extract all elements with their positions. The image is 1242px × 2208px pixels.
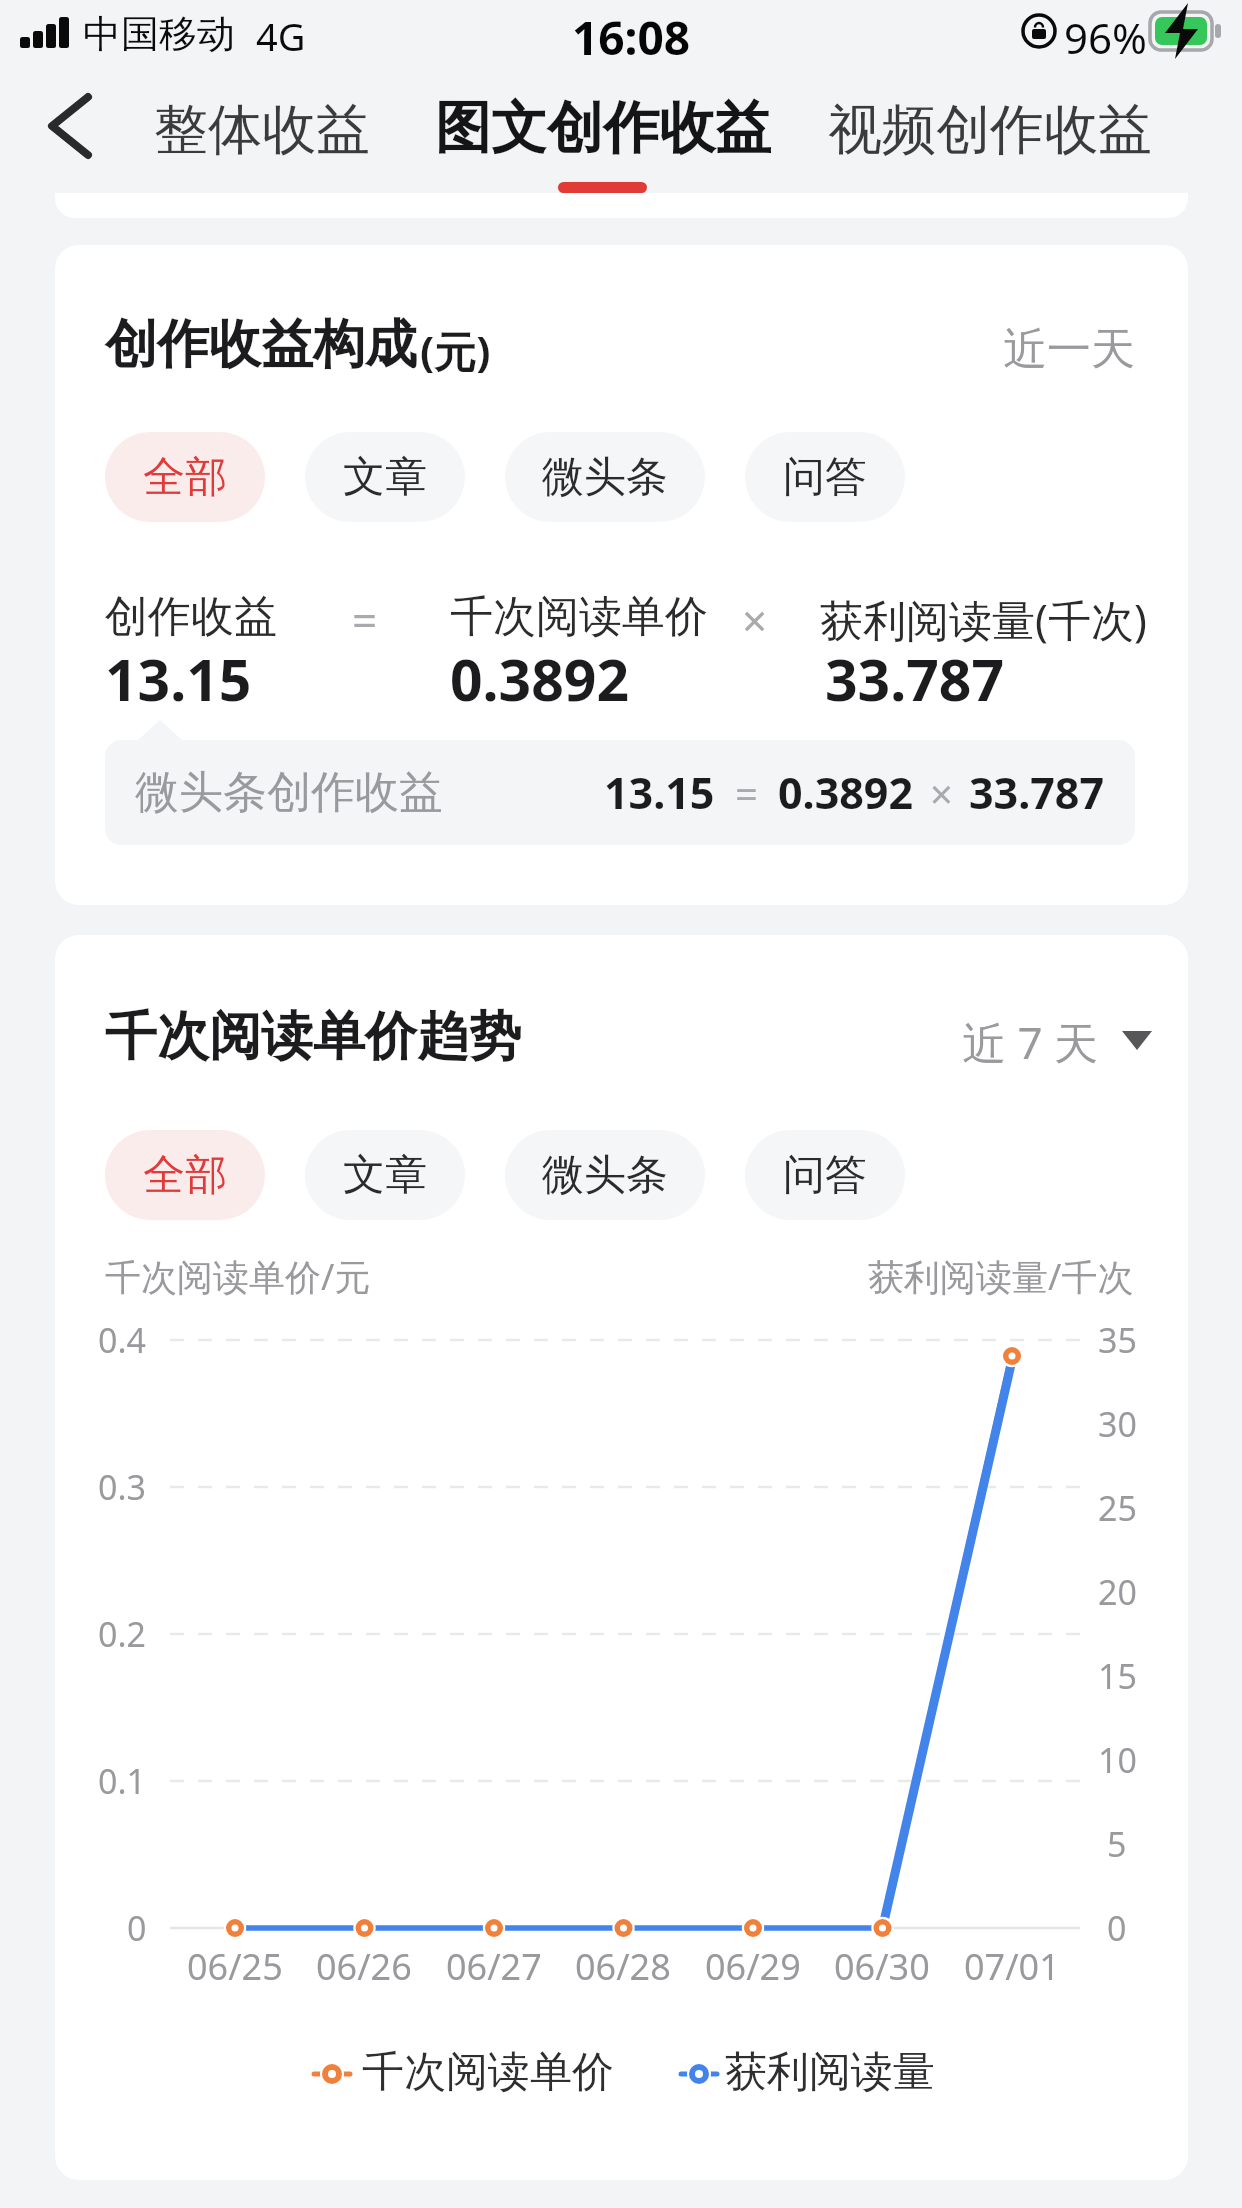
staticText: 获利阅读量(千次): [820, 590, 1147, 649]
staticText: 25: [1098, 1485, 1137, 1531]
staticText: 20: [1098, 1569, 1137, 1615]
staticText: 千次阅读单价: [362, 2046, 614, 2099]
staticText: 96%: [1064, 9, 1147, 66]
staticText: 4G: [256, 10, 306, 62]
staticText: 30: [1098, 1401, 1137, 1447]
staticText: 文章: [343, 451, 427, 504]
staticText: 0: [1107, 1905, 1127, 1951]
staticText: 15: [1098, 1653, 1137, 1699]
staticText: 问答: [783, 451, 867, 504]
staticText: 整体收益: [154, 96, 370, 164]
button[interactable]: 微头条: [505, 432, 705, 522]
staticText: 获利阅读量: [725, 2046, 935, 2099]
staticText: 近一天: [1003, 322, 1135, 377]
button[interactable]: 微头条: [505, 1130, 705, 1220]
staticText: 0.3: [98, 1464, 147, 1510]
staticText: 06/30: [834, 1942, 930, 1991]
button[interactable]: 问答: [745, 1130, 905, 1220]
staticText: 中国移动: [83, 10, 235, 58]
staticText: 微头条创作收益: [135, 765, 443, 820]
staticText: 视频创作收益: [828, 96, 1152, 164]
staticText: 16:08: [572, 6, 691, 69]
button[interactable]: [30, 80, 110, 180]
staticText: 图文创作收益: [435, 93, 771, 164]
button[interactable]: 文章: [305, 432, 465, 522]
staticText: 33.787: [969, 763, 1105, 822]
staticText: ×: [742, 590, 768, 650]
staticText: 微头条: [542, 1149, 668, 1202]
staticText: 13.15: [105, 640, 252, 718]
staticText: 获利阅读量/千次: [868, 1252, 1134, 1301]
staticText: 33.787: [825, 640, 1005, 718]
staticText: (元): [420, 322, 491, 379]
staticText: 13.15: [604, 763, 715, 822]
staticText: 07/01: [964, 1942, 1060, 1991]
staticText: =: [735, 766, 758, 820]
staticText: 全部: [143, 451, 227, 504]
staticText: 创作收益: [105, 590, 277, 644]
staticText: 千次阅读单价趋势: [105, 1004, 521, 1070]
staticText: 全部: [143, 1149, 227, 1202]
staticText: =: [352, 590, 378, 650]
staticText: 0.3892: [778, 763, 914, 822]
staticText: ×: [930, 766, 953, 820]
staticText: 0: [127, 1905, 147, 1951]
staticText: 创作收益构成: [105, 312, 417, 378]
staticText: 文章: [343, 1149, 427, 1202]
staticText: 千次阅读单价: [450, 590, 708, 644]
staticText: 06/25: [187, 1942, 283, 1991]
staticText: 0.4: [98, 1317, 147, 1363]
staticText: 5: [1107, 1821, 1127, 1867]
staticText: 06/29: [705, 1942, 801, 1991]
staticText: 0.2: [98, 1611, 147, 1657]
staticText: 0.1: [98, 1758, 147, 1804]
staticText: 近 7 天: [962, 1012, 1099, 1072]
staticText: 06/26: [316, 1942, 412, 1991]
button[interactable]: 全部: [105, 1130, 265, 1220]
button[interactable]: 全部: [105, 432, 265, 522]
staticText: 06/27: [446, 1942, 542, 1991]
staticText: 06/28: [575, 1942, 671, 1991]
staticText: 35: [1098, 1317, 1137, 1363]
staticText: 千次阅读单价/元: [105, 1252, 371, 1301]
staticText: 10: [1098, 1737, 1137, 1783]
staticText: 问答: [783, 1149, 867, 1202]
button[interactable]: 文章: [305, 1130, 465, 1220]
staticText: 微头条: [542, 451, 668, 504]
staticText: 0.3892: [450, 640, 630, 718]
button[interactable]: 问答: [745, 432, 905, 522]
